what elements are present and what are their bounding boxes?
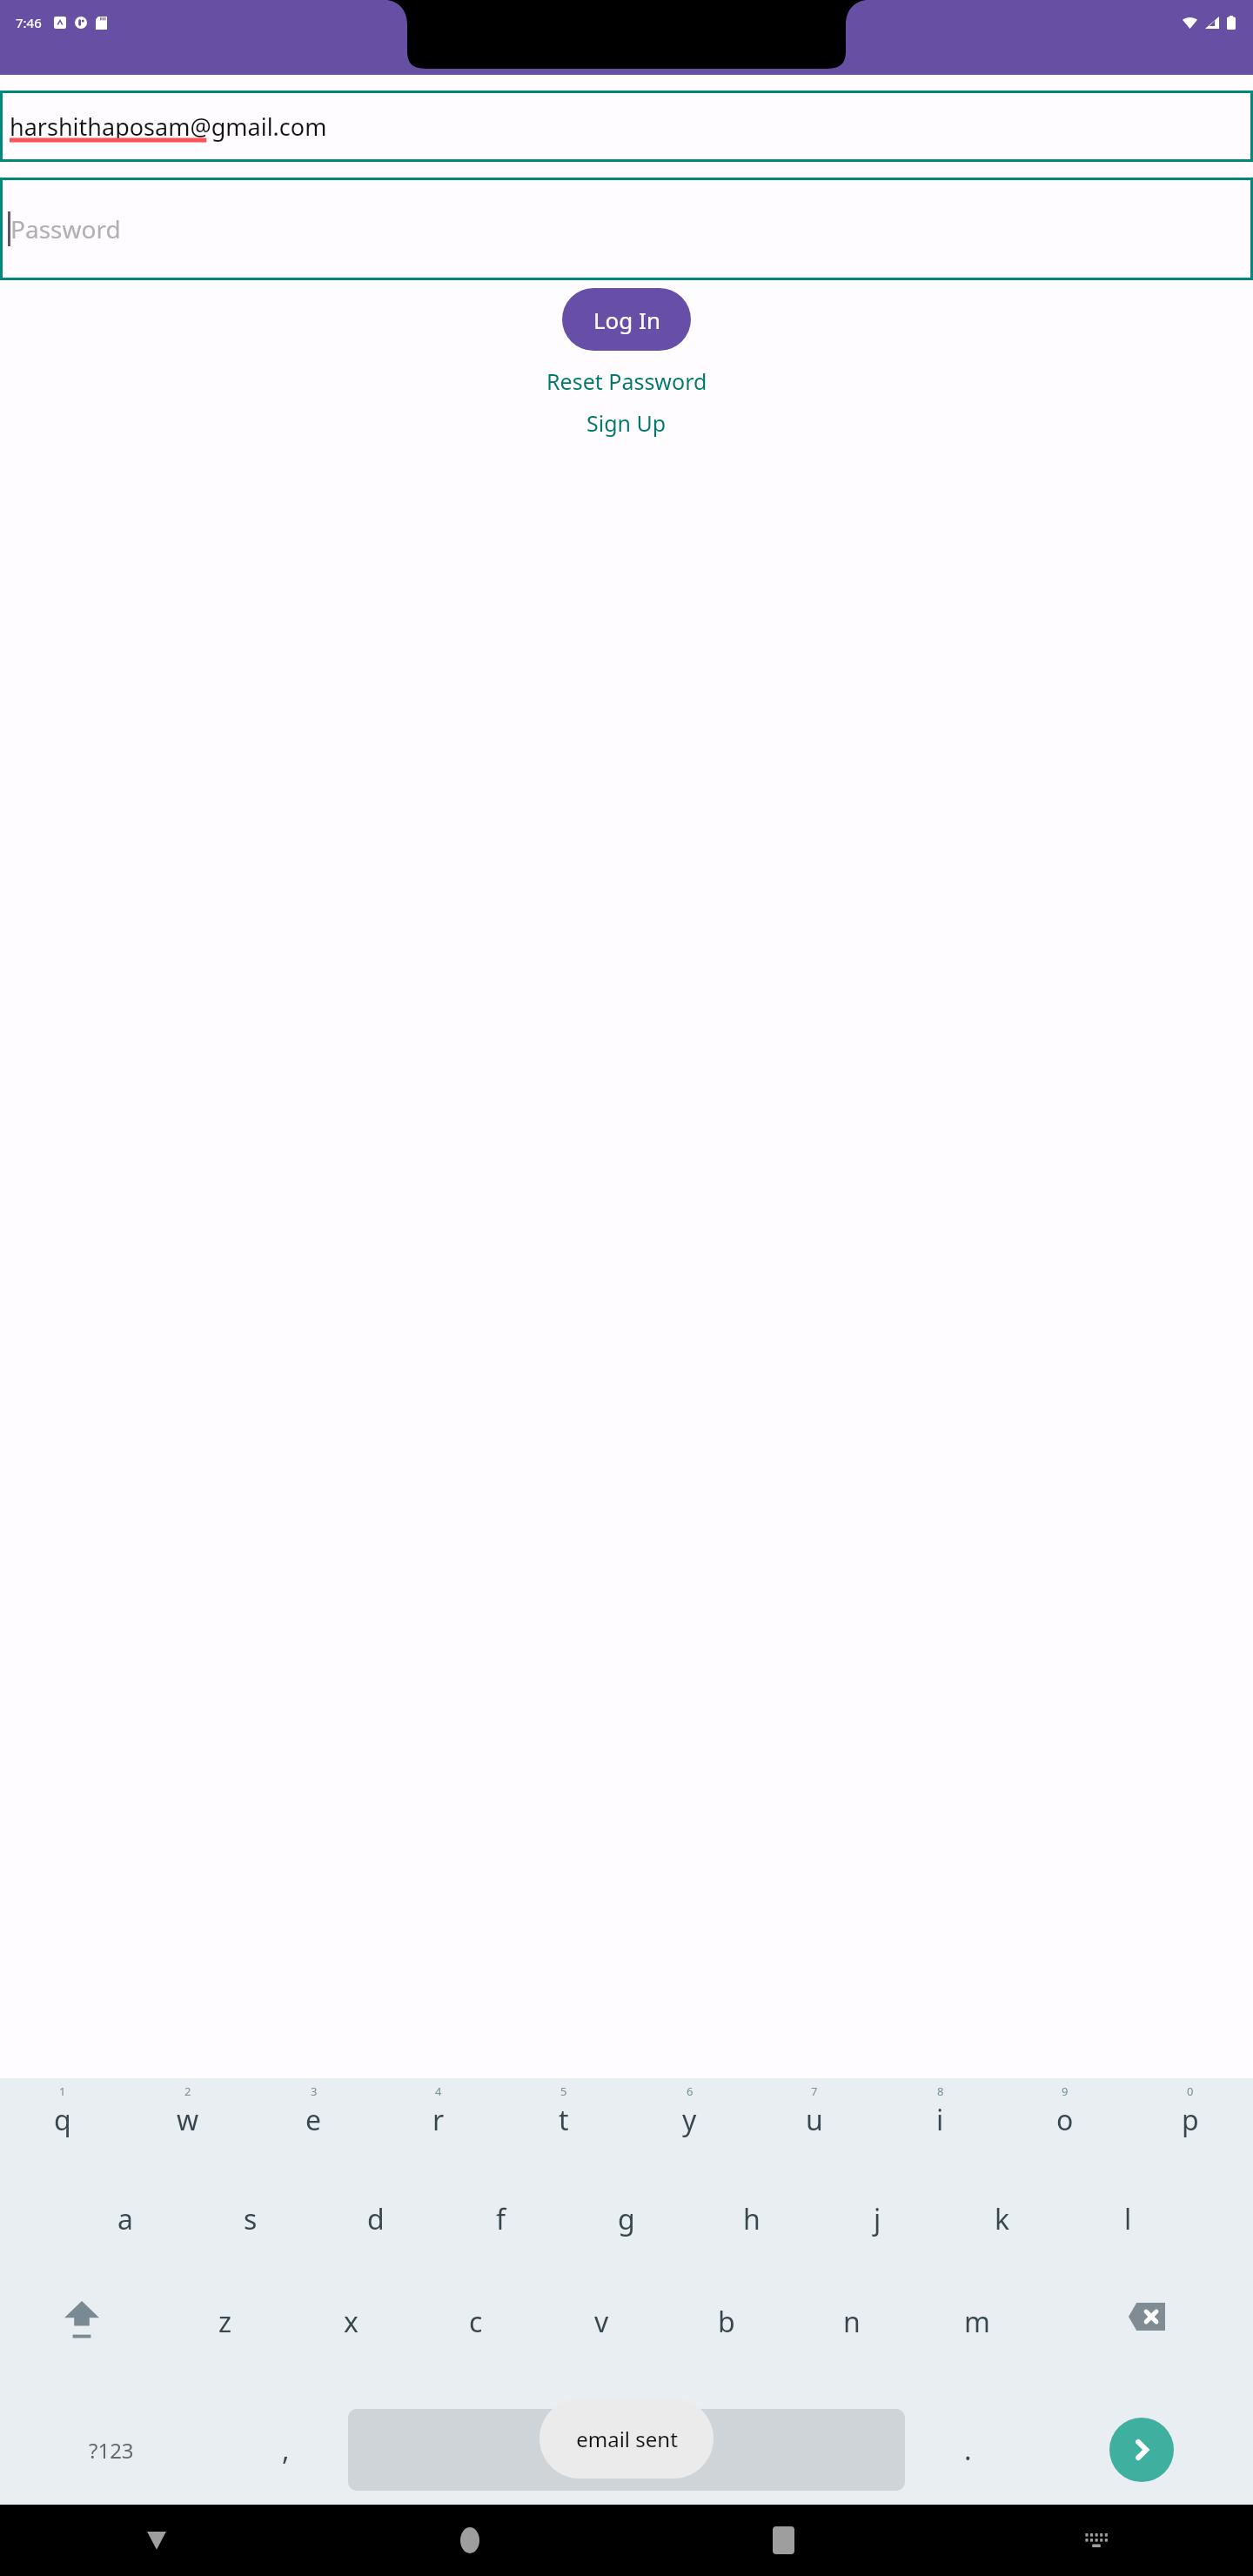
staticText: . [964, 2431, 972, 2469]
button[interactable]: 4 [376, 2078, 501, 2190]
button[interactable]: Shift [0, 2292, 163, 2395]
button[interactable]: Enter [1109, 2418, 1174, 2482]
staticText: q [54, 2101, 71, 2139]
staticText: , [282, 2431, 290, 2469]
button[interactable]: c [413, 2292, 539, 2395]
staticText: 7:46 [16, 14, 42, 31]
button[interactable]: 3 [251, 2078, 376, 2190]
staticText: 6 [687, 2083, 694, 2099]
button[interactable]: f [439, 2190, 564, 2292]
button[interactable]: m [915, 2292, 1040, 2395]
button[interactable]: Sign Up [580, 406, 673, 439]
button[interactable]: 7 [752, 2078, 877, 2190]
staticText: g [618, 2200, 635, 2238]
staticText: k [995, 2200, 1010, 2238]
button[interactable]: g [564, 2190, 689, 2292]
button[interactable]: . [905, 2395, 1030, 2505]
button[interactable]: j [814, 2190, 940, 2292]
button[interactable]: z [163, 2292, 288, 2395]
staticText: z [218, 2303, 232, 2341]
button[interactable]: d [313, 2190, 439, 2292]
staticText: 4 [435, 2083, 442, 2099]
staticText: p [1182, 2101, 1199, 2139]
staticText: Sign Up [586, 408, 667, 438]
staticText: Log In [593, 305, 660, 335]
button[interactable]: Log In [562, 288, 691, 351]
staticText: ?123 [89, 2436, 134, 2465]
button[interactable]: k [940, 2190, 1065, 2292]
button[interactable]: v [539, 2292, 664, 2395]
button[interactable]: 5 [501, 2078, 626, 2190]
staticText: o [1056, 2101, 1074, 2139]
button[interactable]: x [288, 2292, 413, 2395]
staticText: harshithaposam@gmail.com [10, 111, 327, 143]
button[interactable]: b [664, 2292, 789, 2395]
button[interactable]: s [188, 2190, 313, 2292]
staticText: Reset Password [546, 366, 707, 396]
staticText: x [344, 2303, 358, 2341]
staticText: j [874, 2200, 881, 2238]
button[interactable]: Password [0, 178, 1253, 280]
button[interactable]: 8 [877, 2078, 1002, 2190]
staticText: 5 [560, 2083, 567, 2099]
staticText: a [117, 2200, 133, 2238]
button[interactable]: l [1065, 2190, 1190, 2292]
staticText: l [1124, 2200, 1132, 2238]
button[interactable]: Back [0, 2505, 313, 2576]
staticText: s [244, 2200, 258, 2238]
staticText: m [964, 2303, 990, 2341]
button[interactable]: Switch keyboard [940, 2505, 1253, 2576]
staticText: 2 [184, 2083, 191, 2099]
staticText: y [682, 2101, 697, 2139]
staticText: r [432, 2101, 445, 2139]
staticText: 8 [937, 2083, 944, 2099]
staticText: 0 [1187, 2083, 1194, 2099]
staticText: u [806, 2101, 823, 2139]
button[interactable]: , [223, 2395, 348, 2505]
button[interactable]: ?123 [0, 2395, 223, 2505]
staticText: 7 [811, 2083, 818, 2099]
button[interactable]: a [63, 2190, 188, 2292]
staticText: 3 [311, 2083, 318, 2099]
staticText: n [843, 2303, 861, 2341]
staticText: 9 [1062, 2083, 1069, 2099]
button[interactable]: 6 [626, 2078, 752, 2190]
button[interactable]: n [789, 2292, 915, 2395]
button[interactable]: 9 [1002, 2078, 1128, 2190]
staticText: v [594, 2303, 609, 2341]
staticText: Password [10, 212, 121, 245]
button[interactable]: Home [313, 2505, 626, 2576]
staticText: t [559, 2101, 569, 2139]
staticText: f [496, 2200, 506, 2238]
staticText: c [469, 2303, 483, 2341]
staticText: b [718, 2303, 735, 2341]
staticText: d [367, 2200, 385, 2238]
button[interactable]: 2 [125, 2078, 251, 2190]
staticText: 1 [59, 2083, 66, 2099]
button[interactable]: Delete [1040, 2292, 1253, 2395]
button[interactable]: h [689, 2190, 814, 2292]
button[interactable]: 0 [1128, 2078, 1253, 2190]
button[interactable]: Reset Password [539, 365, 714, 398]
button[interactable]: Space [348, 2409, 905, 2491]
staticText: w [177, 2101, 199, 2139]
staticText: e [305, 2101, 322, 2139]
staticText: i [936, 2101, 944, 2139]
button[interactable]: harshithaposam@gmail.com [0, 91, 1253, 162]
button[interactable]: 1 [0, 2078, 125, 2190]
staticText: email sent [576, 2425, 678, 2453]
button[interactable]: Recents [626, 2505, 940, 2576]
staticText: h [743, 2200, 761, 2238]
